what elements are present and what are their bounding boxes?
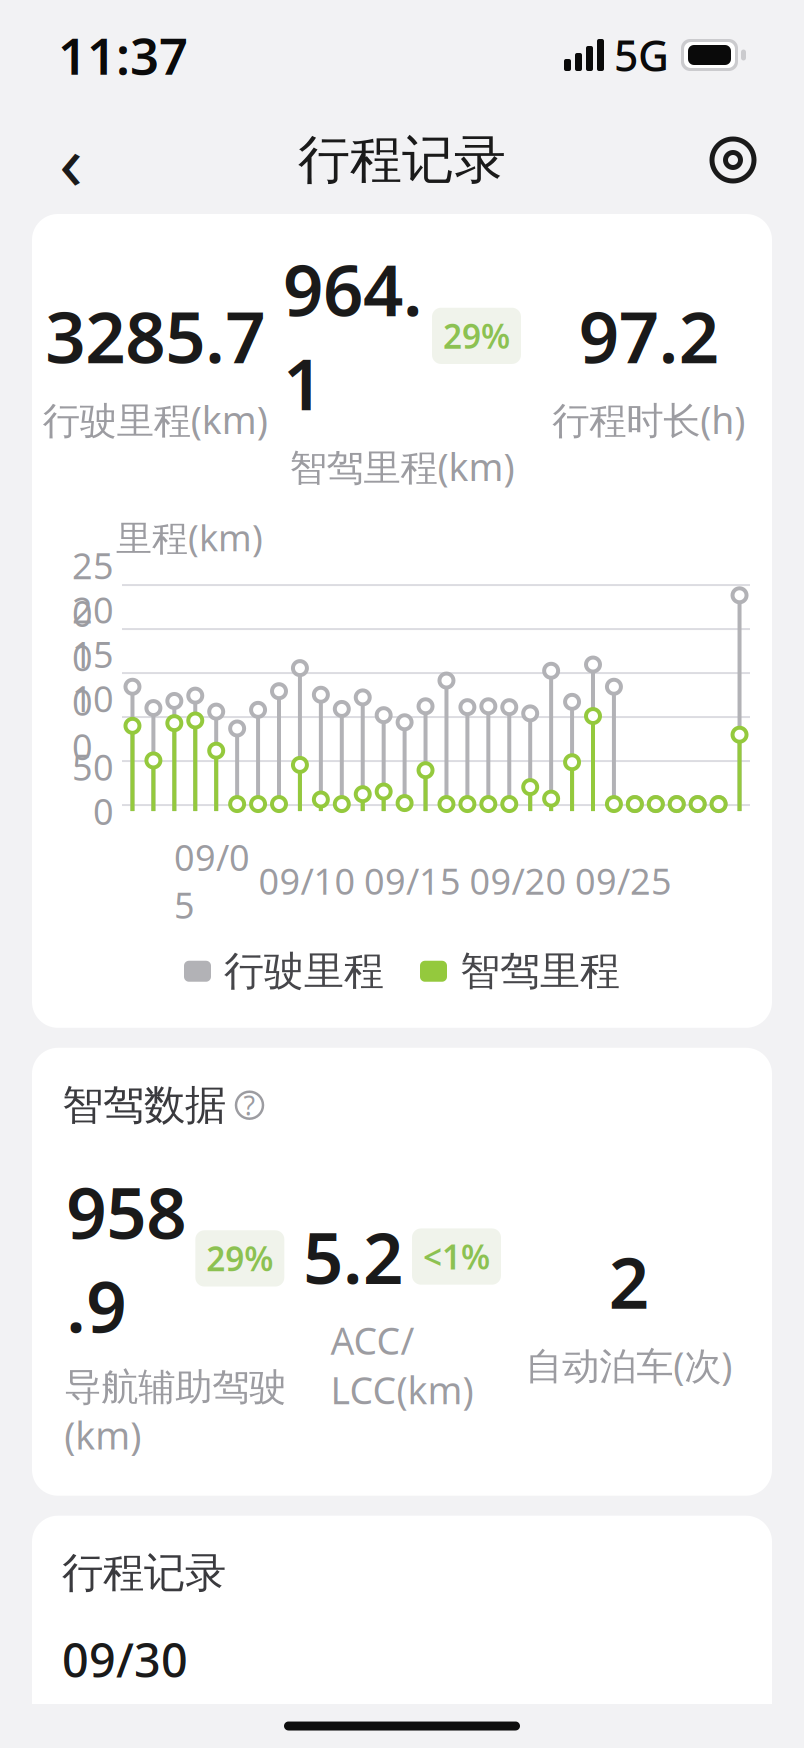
staticText: 2	[609, 1234, 649, 1328]
staticText: 5.2	[303, 1210, 403, 1303]
staticText: 100	[72, 674, 114, 770]
staticText: 09/20	[469, 857, 566, 905]
staticText: ‹	[59, 109, 83, 211]
staticText: 09/15	[364, 857, 461, 905]
staticText: 行程记录	[298, 128, 506, 192]
staticText: 29%	[206, 1236, 273, 1281]
button[interactable]: Settings	[696, 123, 770, 197]
staticText: ACC/LCC(km)	[330, 1315, 473, 1415]
staticText: 09/30	[62, 1628, 188, 1690]
button[interactable]: Back	[34, 123, 108, 197]
button[interactable]: 21:52	[62, 1714, 742, 1748]
staticText: 97.2	[579, 289, 719, 383]
staticText: 智驾里程(km)	[289, 442, 514, 491]
staticText: 行驶里程(km)	[43, 395, 268, 444]
staticText: 958.9	[66, 1165, 186, 1352]
staticText: ?	[243, 1087, 255, 1123]
staticText: 3285.7	[45, 289, 265, 383]
staticText: 09/25	[575, 857, 672, 905]
staticText: 行程记录	[62, 1548, 226, 1598]
staticText: 自动泊车(次)	[525, 1340, 732, 1390]
staticText: 5G	[614, 27, 669, 83]
staticText: 200	[72, 586, 114, 681]
staticText: 行驶里程	[224, 947, 384, 996]
staticText: 964.1	[283, 242, 423, 430]
staticText: 250	[72, 541, 114, 637]
staticText: 导航辅助驾驶(km)	[64, 1364, 286, 1460]
staticText: 09/10	[258, 857, 355, 905]
staticText: 150	[72, 630, 114, 726]
staticText: 11:37	[58, 21, 188, 89]
staticText: 行程时长(h)	[552, 395, 745, 444]
staticText: 29%	[443, 314, 510, 358]
staticText: 50	[72, 743, 114, 791]
staticText: 0	[93, 787, 114, 835]
staticText: 智驾里程	[460, 947, 620, 996]
staticText: <1%	[423, 1234, 490, 1279]
staticText: 里程(km)	[116, 513, 263, 561]
staticText: 09/05	[174, 833, 250, 929]
staticText: 智驾数据	[62, 1080, 226, 1131]
